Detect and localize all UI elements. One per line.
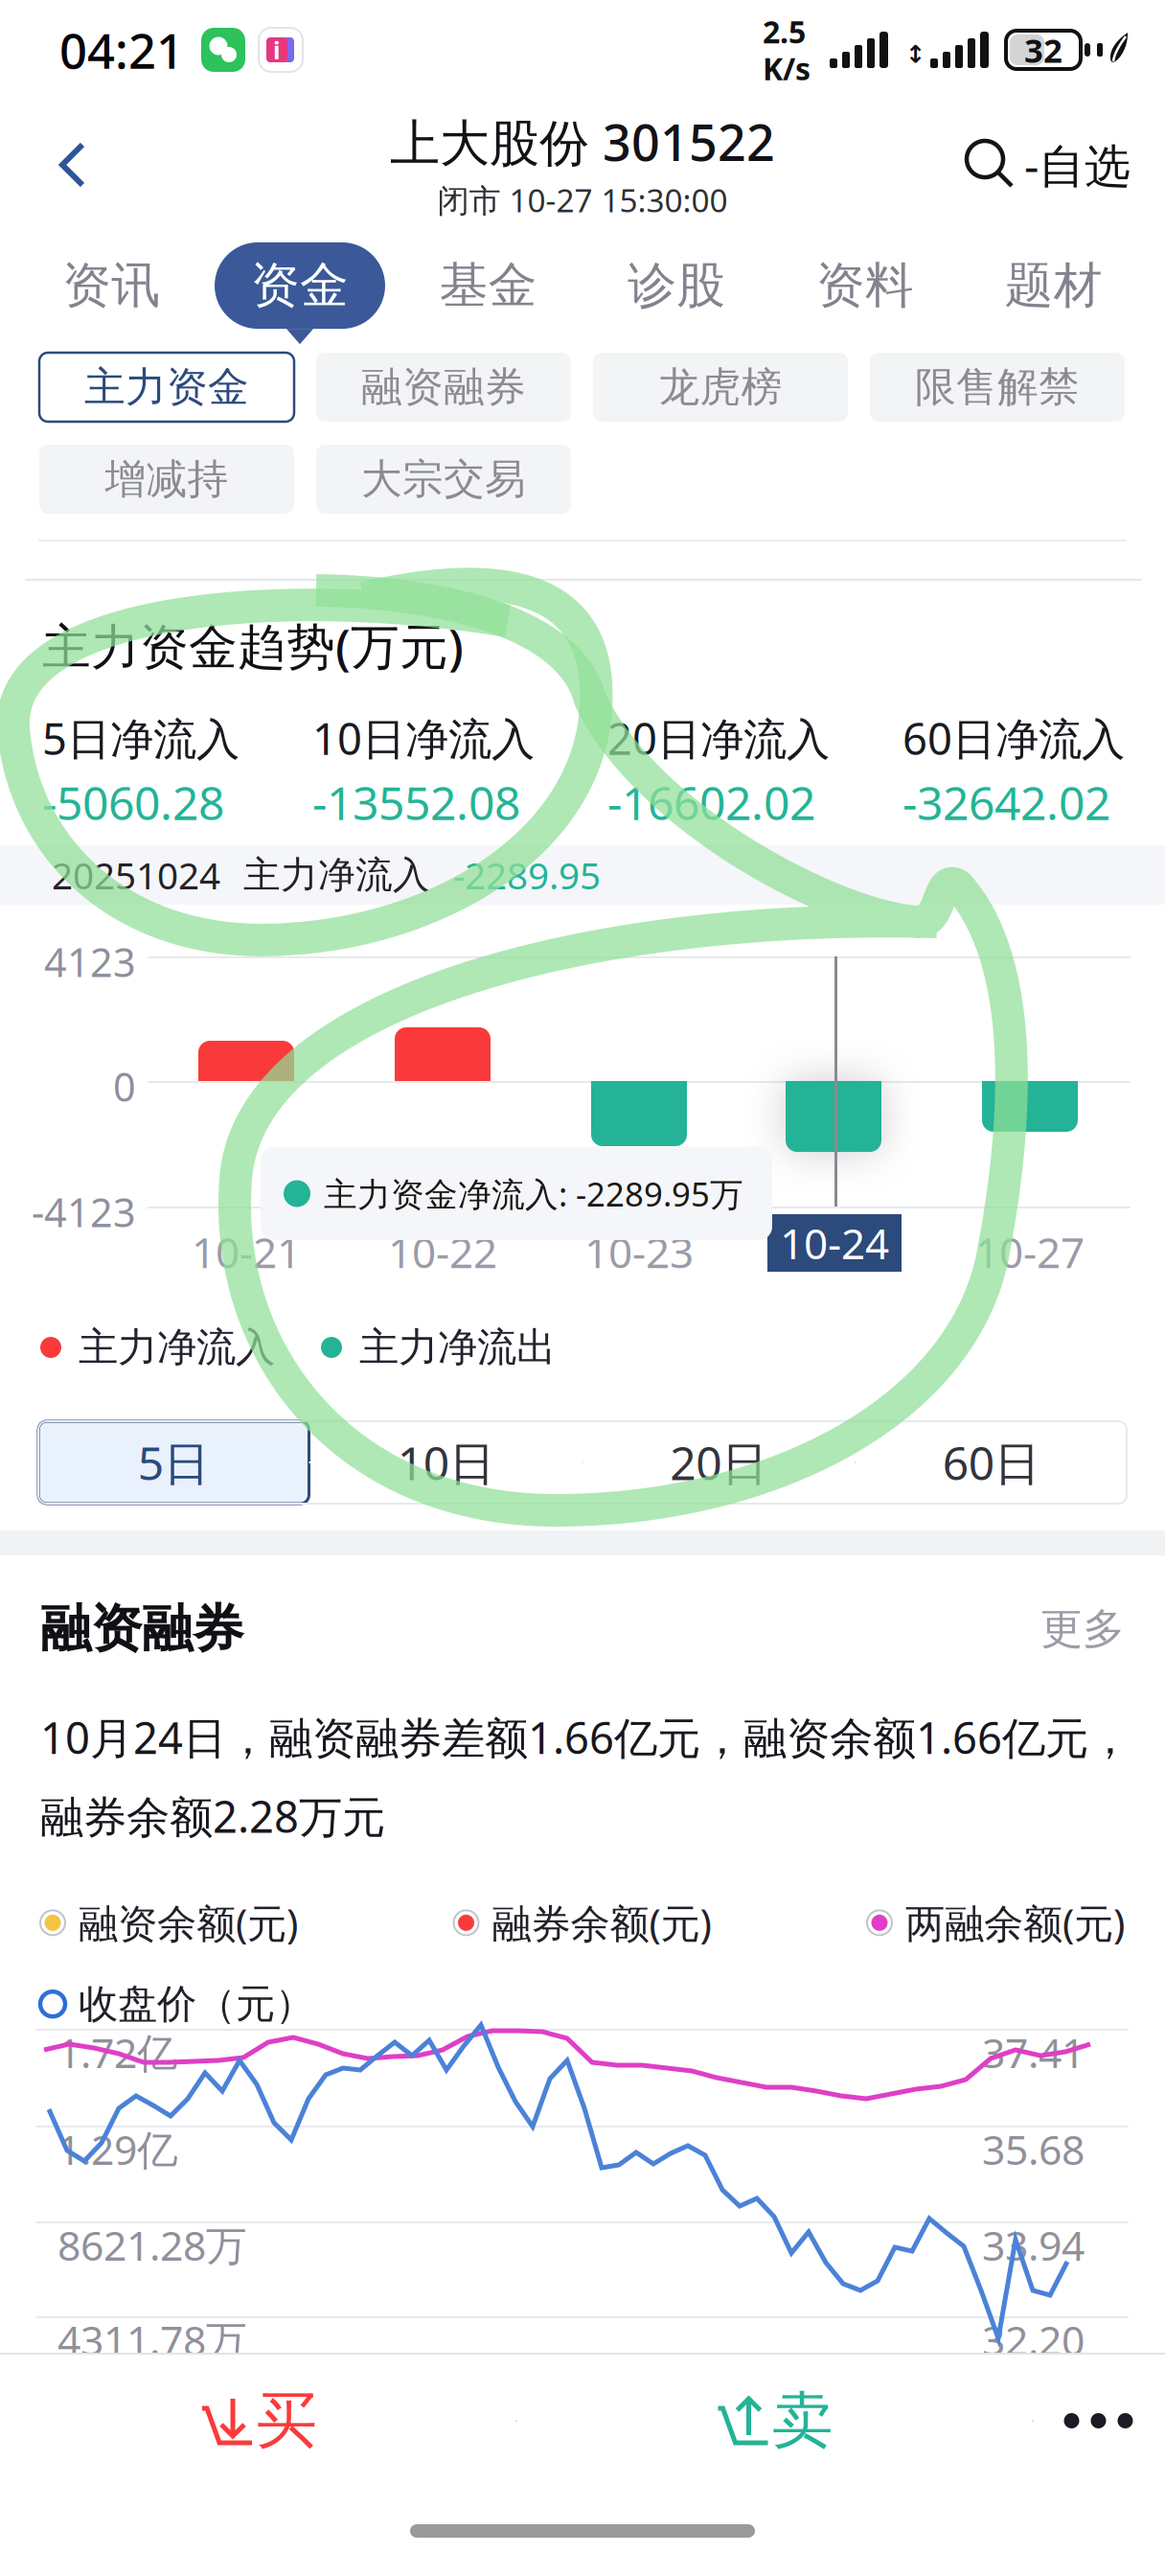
button[interactable]: 60日 <box>856 1421 1127 1504</box>
staticText: 融资融券 <box>361 362 526 412</box>
staticText: 融券余额2.28万元 <box>40 1787 385 1845</box>
button[interactable]: 买 <box>0 2353 515 2489</box>
staticText: 10-27 <box>975 1224 1085 1280</box>
staticText: 10-21 <box>192 1224 301 1280</box>
staticText: 资讯 <box>63 256 160 315</box>
staticText: 主力资金趋势(万元) <box>42 613 464 678</box>
button[interactable]: 卖 <box>0 2353 516 2489</box>
staticText: 主力净流出 <box>359 1323 556 1372</box>
staticText: -5060.28 <box>42 772 224 833</box>
staticText: -4123 <box>32 1185 136 1238</box>
button[interactable]: 10日 <box>311 1421 582 1504</box>
button[interactable]: -自选 <box>957 119 1140 211</box>
staticText: 更多 <box>1040 1603 1125 1655</box>
staticText: 两融余额(元) <box>905 1896 1125 1949</box>
staticText: 收盘价（元） <box>79 1980 314 2028</box>
button[interactable]: 更多 <box>1040 1603 1125 1655</box>
button[interactable]: 更多 <box>0 2353 133 2489</box>
staticText: -32642.02 <box>902 772 1110 833</box>
staticText: 4311.78万 <box>57 2312 247 2367</box>
staticText: 卖 <box>772 2383 833 2458</box>
button[interactable]: 融资融券 <box>316 353 571 422</box>
staticText: -自选 <box>1024 134 1131 195</box>
staticText: 基金 <box>439 256 537 315</box>
button[interactable]: 返回 <box>29 119 117 211</box>
staticText: -13552.08 <box>312 772 520 833</box>
button[interactable]: 5日 <box>38 1421 309 1504</box>
staticText: 32.20 <box>982 2312 1085 2367</box>
staticText: 20251024 <box>52 850 220 899</box>
staticText: -16602.02 <box>607 772 815 833</box>
staticText: ↕ <box>905 40 925 68</box>
staticText: 04:21 <box>59 18 184 82</box>
button[interactable]: 资金 <box>206 244 394 342</box>
staticText: 20日 <box>670 1432 768 1493</box>
staticText: 1.72亿 <box>57 2025 178 2079</box>
staticText: 上大股份 301522 <box>390 109 775 175</box>
staticText: 限售解禁 <box>915 362 1080 412</box>
staticText: 10日 <box>397 1432 495 1493</box>
staticText: 20日净流入 <box>607 709 830 767</box>
staticText: 龙虎榜 <box>659 362 782 412</box>
staticText: 融资余额(元) <box>79 1896 298 1949</box>
button[interactable]: 诊股 <box>582 244 771 342</box>
staticText: 10日净流入 <box>312 709 535 767</box>
staticText: 1.29亿 <box>57 2122 178 2176</box>
staticText: 资料 <box>816 256 914 315</box>
staticText: 60日 <box>943 1432 1040 1493</box>
staticText: 增减持 <box>105 454 228 504</box>
button[interactable]: 大宗交易 <box>316 445 571 514</box>
staticText: 10-24 <box>780 1215 889 1271</box>
staticText: 主力净流入 <box>79 1323 275 1372</box>
staticText: 题材 <box>1005 256 1102 315</box>
button[interactable]: 龙虎榜 <box>593 353 848 422</box>
staticText: 融券余额(元) <box>492 1896 711 1949</box>
staticText: 10月24日，融资融券差额1.66亿元，融资余额1.66亿元， <box>40 1708 1131 1766</box>
staticText: i <box>273 34 281 66</box>
staticText: 5日 <box>138 1432 210 1493</box>
button[interactable]: 限售解禁 <box>870 353 1125 422</box>
staticText: 资金 <box>251 256 349 315</box>
staticText: 37.41 <box>982 2025 1085 2079</box>
staticText: 主力资金净流入: -2289.95万 <box>324 1172 743 1216</box>
button[interactable]: 基金 <box>394 244 582 342</box>
staticText: 35.68 <box>982 2122 1085 2176</box>
staticText: 买 <box>256 2383 317 2458</box>
button[interactable]: 20日 <box>583 1421 854 1504</box>
staticText: 2.5 <box>763 11 806 52</box>
staticText: 主力资金 <box>84 362 249 412</box>
staticText: K/s <box>763 48 811 89</box>
staticText: 主力净流入 <box>243 852 430 898</box>
staticText: 4123 <box>44 935 136 988</box>
staticText: 闭市 10-27 15:30:00 <box>437 179 728 221</box>
staticText: 大宗交易 <box>361 454 526 504</box>
staticText: 33.94 <box>982 2218 1085 2272</box>
button[interactable]: 资讯 <box>17 244 206 342</box>
staticText: 融资融券 <box>40 1598 243 1660</box>
staticText: 诊股 <box>628 256 726 315</box>
staticText: -2289.95 <box>453 850 601 899</box>
staticText: 8621.28万 <box>57 2218 247 2272</box>
staticText: 5日净流入 <box>42 709 240 767</box>
button[interactable]: 题材 <box>959 244 1148 342</box>
staticText: 60日净流入 <box>902 709 1125 767</box>
staticText: 10-22 <box>388 1224 497 1280</box>
button[interactable]: 增减持 <box>39 445 294 514</box>
staticText: 10-23 <box>584 1224 694 1280</box>
button[interactable]: 主力资金 <box>39 353 294 422</box>
staticText: 0 <box>113 1060 136 1113</box>
button[interactable]: 资料 <box>771 244 959 342</box>
staticText: 32 <box>1024 28 1062 72</box>
